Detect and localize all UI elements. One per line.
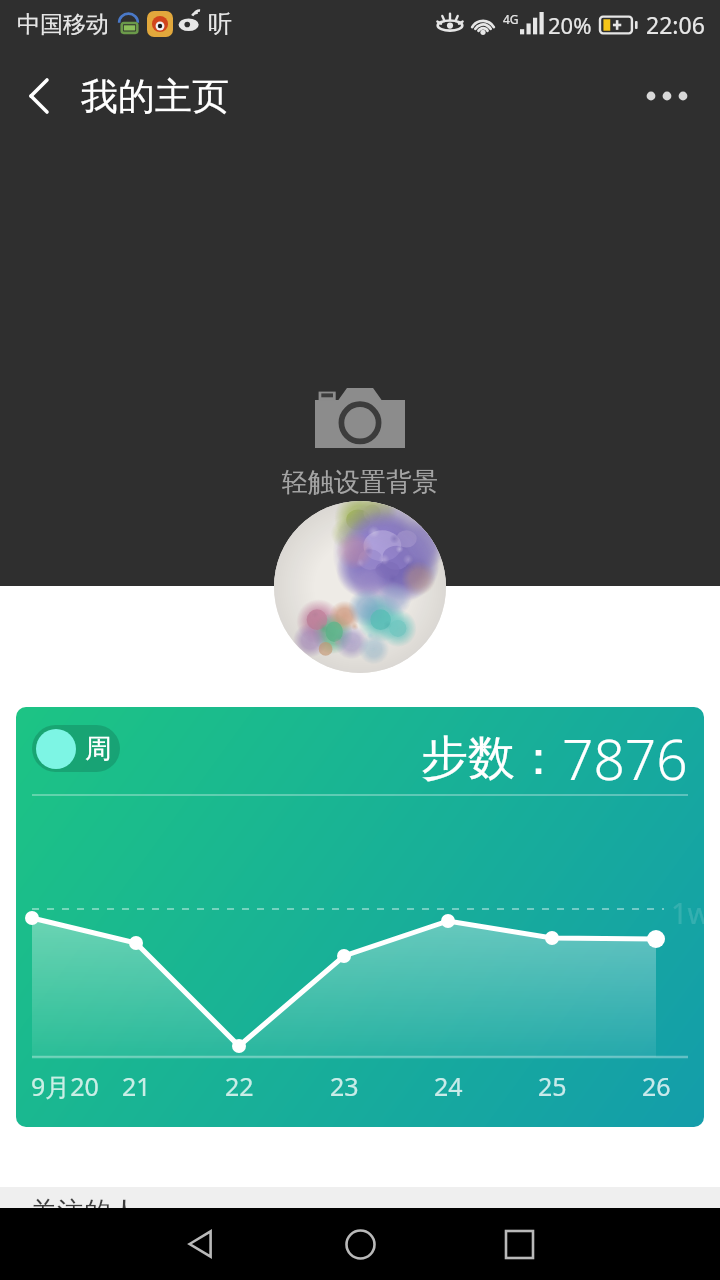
button[interactable]: More options [635, 64, 699, 128]
staticText: 9月20 [31, 1069, 99, 1103]
staticText: 轻触设置背景 [282, 466, 438, 499]
staticText: 22 [225, 1069, 254, 1103]
button[interactable]: Set background [0, 144, 720, 586]
staticText: 听 [208, 9, 232, 39]
staticText: 关注的人 [30, 1195, 138, 1208]
button[interactable]: 周 [32, 725, 120, 772]
staticText: 我的主页 [81, 73, 229, 120]
button[interactable]: Profile photo [274, 501, 446, 673]
staticText: 1w [671, 893, 704, 932]
staticText: 24 [434, 1069, 463, 1103]
button[interactable]: Back [173, 1216, 229, 1272]
staticText: 20% [548, 10, 592, 40]
button[interactable]: Home [332, 1216, 388, 1272]
staticText: 周 [85, 732, 112, 766]
button[interactable]: Recent apps [491, 1216, 547, 1272]
staticText: 22:06 [646, 9, 705, 40]
staticText: 25 [538, 1069, 567, 1103]
staticText: 26 [642, 1069, 671, 1103]
button[interactable]: 周 [16, 707, 704, 1127]
staticText: 中国移动 [17, 10, 109, 39]
staticText: 7876 [562, 721, 688, 796]
staticText: 4G [503, 11, 519, 27]
button[interactable]: Back [13, 70, 65, 122]
button[interactable]: 关注的人 [0, 1187, 720, 1208]
staticText: 步数： [421, 729, 562, 788]
staticText: 21 [122, 1069, 151, 1103]
staticText: 23 [330, 1069, 359, 1103]
